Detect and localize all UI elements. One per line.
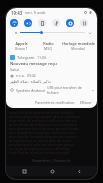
staticText: sont estompées et presque noires sur fon…	[9, 130, 76, 134]
staticText: sous-titre de la page actuelle vue affic…	[9, 110, 74, 114]
button[interactable]: Back	[75, 167, 83, 175]
staticText: تذكير بالصلاة ـ صلاة الظهر	[10, 79, 51, 84]
staticText: Paramètres | Gestion fic	[32, 158, 71, 163]
button[interactable]: Recents	[20, 167, 28, 175]
staticText: MSQ	[44, 46, 52, 51]
staticText: texte final de la section en bas de page	[9, 150, 70, 154]
staticText: 11:06	[37, 55, 47, 60]
staticText: Radio	[43, 41, 54, 46]
button[interactable]: Système Android	[10, 85, 93, 95]
staticText: 19:43	[11, 10, 23, 16]
other: Expand	[88, 31, 92, 35]
staticText: le panneau de notification affiché au de…	[9, 118, 77, 122]
staticText: sur la partie supérieure écran affichage	[9, 146, 70, 150]
staticText: ici sur l'écran du téléphone noir en fon…	[9, 122, 77, 126]
staticText: pendant que le volet est ouvert par dess…	[9, 142, 75, 146]
staticText: USB pour transfert de fichiers	[47, 85, 93, 95]
staticText: Salut	[10, 67, 19, 72]
button[interactable]: Radio	[35, 39, 61, 51]
staticText: e.s.a.	[16, 73, 25, 78]
button[interactable]: Wi-Fi	[10, 19, 18, 27]
button[interactable]: Horloge mondiale	[61, 39, 95, 51]
staticText: ven. 5 août	[25, 10, 46, 15]
button[interactable]: Home	[48, 167, 56, 175]
staticText: Telegram	[17, 55, 35, 60]
staticText: Nouveau message reçu	[10, 61, 57, 67]
staticText: contenu de la page masqué derrière panne…	[9, 114, 80, 118]
button[interactable]: Appels	[8, 39, 35, 51]
staticText: Horloge mondiale	[62, 41, 95, 46]
button[interactable]: e.s.a.	[10, 73, 93, 84]
staticText: 09:42	[27, 73, 36, 78]
staticText: Système Android	[16, 88, 45, 93]
button[interactable]: Battery saver	[38, 19, 46, 27]
button[interactable]: Bluetooth	[52, 19, 60, 27]
button[interactable]: Auto rotate	[80, 19, 88, 27]
button[interactable]: Paramètres notification	[34, 99, 76, 106]
staticText: Mondial	[71, 46, 85, 51]
staticText: de l'application en arrière plan de l'éc…	[9, 138, 72, 142]
staticText: Bravo 1	[15, 46, 28, 51]
button[interactable]: Location	[66, 19, 74, 27]
button[interactable]: Sound	[24, 19, 32, 27]
button[interactable]: Telegram	[10, 55, 93, 72]
staticText: pour simuler l'assombrissement du conten…	[9, 134, 78, 138]
staticText: Paramètres notification	[35, 100, 75, 105]
staticText: Appels	[15, 41, 28, 46]
staticText: Effacer	[80, 100, 92, 105]
staticText: avec plusieurs lignes de texte qui sont …	[9, 126, 79, 130]
button[interactable]: Effacer	[79, 99, 93, 106]
